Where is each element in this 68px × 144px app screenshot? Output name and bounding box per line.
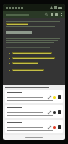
button[interactable]: Device [58, 95, 61, 99]
button[interactable]: Status indicator [53, 111, 56, 114]
button[interactable]: Status indicator [53, 96, 56, 99]
button[interactable]: Search [44, 12, 49, 17]
button[interactable]: Tabs [54, 12, 59, 17]
button[interactable]: Expand [47, 110, 51, 114]
button[interactable]: Device [58, 125, 61, 129]
button[interactable]: Expand [5, 105, 63, 118]
button[interactable]: Bookmarks [49, 12, 54, 17]
button[interactable]: More options [59, 13, 63, 17]
button[interactable] [5, 87, 63, 88]
button[interactable]: Expand [5, 90, 63, 103]
button[interactable]: Expand [5, 120, 63, 133]
button[interactable]: Expand [47, 125, 51, 129]
button[interactable]: Status indicator [53, 126, 56, 129]
button[interactable]: Device [58, 110, 61, 114]
button[interactable]: Expand [47, 95, 51, 99]
button[interactable]: Home [25, 137, 43, 138]
